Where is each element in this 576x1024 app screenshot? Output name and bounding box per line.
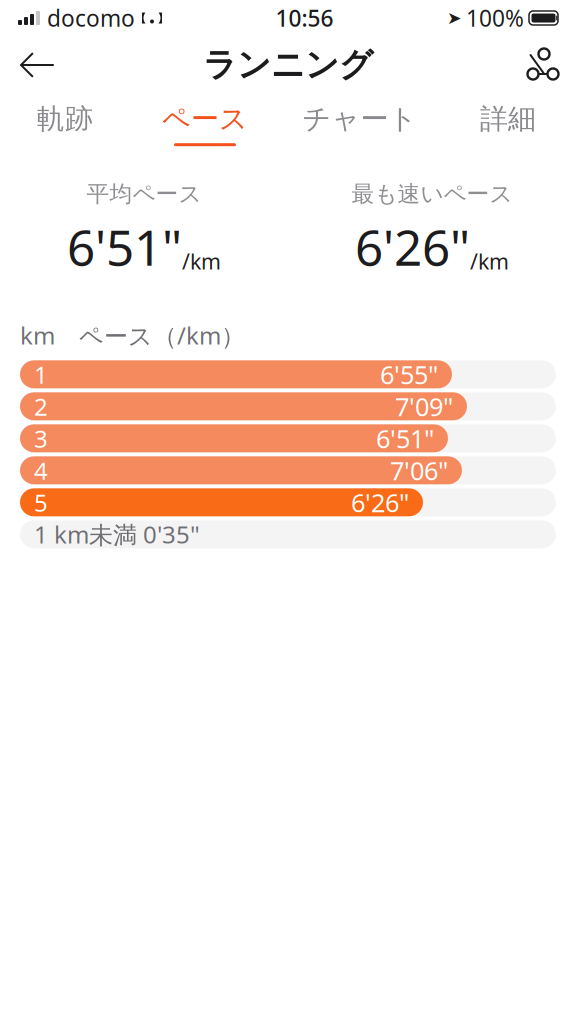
- staticText: /km: [470, 247, 509, 275]
- staticText: 詳細: [480, 102, 536, 136]
- button[interactable]: ペース: [130, 98, 280, 150]
- staticText: 4: [34, 454, 48, 486]
- staticText: 最も速いペース: [351, 180, 512, 208]
- button[interactable]: 共有: [512, 38, 566, 92]
- staticText: 6'55": [380, 357, 438, 391]
- staticText: 6'51": [376, 421, 434, 455]
- button[interactable]: 詳細: [440, 98, 576, 150]
- staticText: 7'06": [390, 453, 448, 487]
- staticText: 6'26": [351, 485, 409, 519]
- staticText: ランニング: [203, 44, 373, 85]
- staticText: 10:56: [275, 3, 333, 33]
- button[interactable]: 軌跡: [0, 98, 130, 150]
- staticText: ペース: [162, 102, 248, 136]
- button[interactable]: 戻る: [10, 38, 64, 92]
- staticText: 7'09": [395, 389, 453, 423]
- staticText: 5: [34, 486, 48, 518]
- staticText: 1 km未満 0'35": [34, 518, 200, 550]
- staticText: /km: [182, 247, 221, 275]
- staticText: docomo: [47, 3, 135, 33]
- staticText: km ペース（/km）: [20, 319, 245, 351]
- staticText: 100%: [466, 3, 524, 33]
- button[interactable]: チャート: [280, 98, 440, 150]
- staticText: 6'51": [67, 214, 182, 279]
- staticText: 6'26": [355, 214, 470, 279]
- staticText: ➤: [447, 8, 462, 28]
- staticText: 平均ペース: [86, 180, 201, 208]
- staticText: チャート: [302, 102, 417, 136]
- staticText: 1: [34, 358, 48, 390]
- staticText: 軌跡: [37, 102, 93, 136]
- staticText: 3: [34, 422, 48, 454]
- staticText: 2: [34, 390, 48, 422]
